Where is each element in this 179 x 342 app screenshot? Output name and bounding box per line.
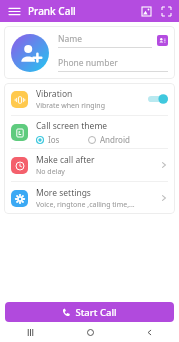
- button[interactable]: Home: [81, 323, 99, 341]
- staticText: No delay: [36, 167, 65, 177]
- button[interactable]: Add contact photo: [11, 34, 49, 72]
- button[interactable]: Start Call: [5, 302, 174, 322]
- staticText: Name: [58, 33, 82, 45]
- button[interactable]: More settings: [4, 182, 175, 214]
- button[interactable]: Back: [140, 323, 158, 341]
- staticText: Voice, ringtone ,calling time,...: [36, 200, 135, 210]
- staticText: Make call after: [36, 154, 95, 166]
- staticText: Prank Call: [28, 4, 76, 18]
- button[interactable]: Vibration: [4, 83, 175, 115]
- staticText: Android: [100, 134, 130, 145]
- staticText: Phone number: [58, 57, 118, 69]
- staticText: Start Call: [75, 306, 117, 319]
- staticText: Vibration: [36, 88, 73, 100]
- button[interactable]: Recents: [21, 323, 39, 341]
- button[interactable]: Pick contact: [157, 35, 168, 46]
- button[interactable]: Scan: [158, 3, 174, 19]
- button[interactable]: Android: [88, 134, 130, 145]
- button[interactable]: Make call after: [4, 149, 175, 181]
- staticText: Call screen theme: [36, 120, 108, 132]
- button[interactable]: Ios: [36, 134, 60, 145]
- staticText: More settings: [36, 187, 91, 199]
- button[interactable]: Menu: [6, 3, 22, 19]
- staticText: Vibrate when ringing: [36, 101, 105, 111]
- button[interactable]: Gallery: [138, 3, 154, 19]
- staticText: Ios: [48, 134, 60, 145]
- button[interactable]: Vibration toggle: [148, 93, 168, 105]
